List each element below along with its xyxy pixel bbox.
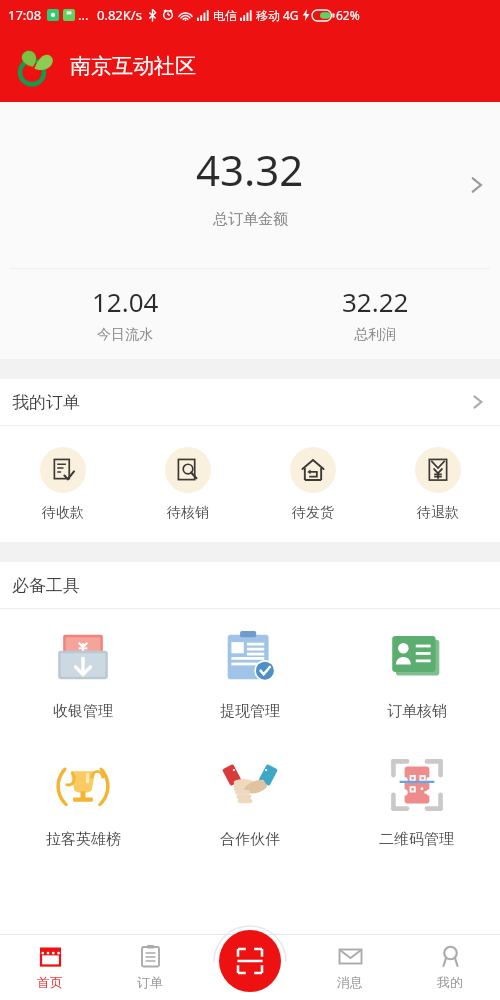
button[interactable]: 待收款 [0,426,125,542]
staticText: 二维码管理 [379,830,454,849]
staticText: 收银管理 [53,702,113,721]
staticText: 必备工具 [12,575,80,596]
button[interactable]: 扫一扫 Scan [219,930,281,992]
staticText: 12.04 [92,284,159,319]
staticText: 今日流水 [97,326,153,344]
staticText: 62% [336,7,360,23]
staticText: 我的 [437,974,463,990]
button[interactable]: 我的 [400,934,500,1000]
staticText: 总订单金额 [213,210,288,229]
staticText: 订单 [137,974,163,990]
button[interactable]: 拉客英雄榜 [0,737,166,865]
button[interactable]: 收银管理 [0,609,166,737]
staticText: 待核销 [167,504,209,522]
button[interactable]: 提现管理 [166,609,333,737]
button[interactable]: 消息 [300,934,400,1000]
button[interactable]: 首页 [0,934,100,1000]
button[interactable]: 待核销 [125,426,250,542]
staticText: 提现管理 [220,702,280,721]
staticText: 订单核销 [387,702,447,721]
button[interactable]: 合作伙伴 [166,737,333,865]
button[interactable]: 二维码管理 [333,737,500,865]
button[interactable]: 32.22 [250,269,500,359]
button[interactable]: 待退款 [375,426,500,542]
staticText: ... [78,6,89,24]
button[interactable]: 43.32 [0,102,500,268]
staticText: 4G [283,7,299,23]
button[interactable]: 待发货 [250,426,375,542]
staticText: 32.22 [342,284,409,319]
staticText: 消息 [337,974,363,990]
staticText: 待收款 [42,504,84,522]
staticText: 拉客英雄榜 [46,830,121,849]
staticText: 移动 [256,8,280,23]
staticText: 南京互动社区 [70,53,196,79]
button[interactable]: 我的订单 [0,379,500,425]
button[interactable]: 订单 [100,934,200,1000]
staticText: 我的订单 [12,392,80,413]
staticText: 17:08 [8,6,42,24]
button[interactable]: 12.04 [0,269,250,359]
button[interactable]: 订单核销 [333,609,500,737]
staticText: 待发货 [292,504,334,522]
staticText: 首页 [37,974,63,990]
staticText: 合作伙伴 [220,830,280,849]
staticText: 43.32 [196,141,304,198]
staticText: 待退款 [417,504,459,522]
staticText: 总利润 [354,326,396,344]
staticText: 0.82K/s [97,6,142,24]
staticText: 电信 [213,8,237,23]
